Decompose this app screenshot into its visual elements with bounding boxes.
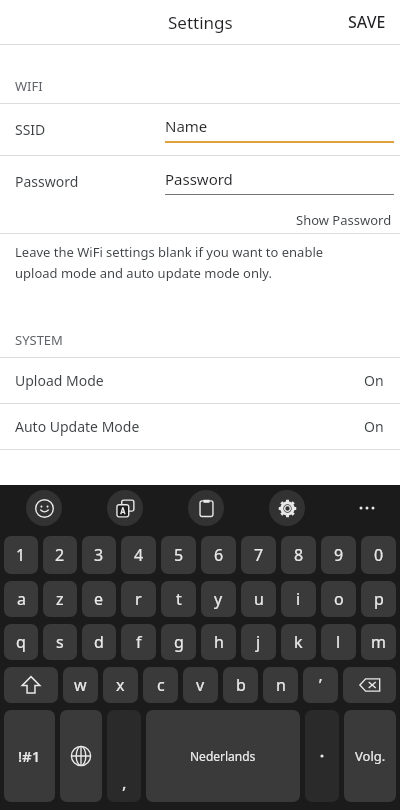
staticText: u: [254, 588, 264, 610]
staticText: w: [74, 674, 87, 696]
button[interactable]: y: [201, 581, 236, 617]
button[interactable]: e: [82, 581, 116, 617]
button[interactable]: [305, 710, 339, 802]
staticText: r: [135, 588, 142, 610]
staticText: 2: [55, 544, 65, 566]
button[interactable]: z: [43, 581, 77, 617]
button[interactable]: Settings: [269, 490, 305, 526]
staticText: SYSTEM: [15, 331, 63, 349]
button[interactable]: Change language: [60, 710, 102, 802]
button[interactable]: 1: [4, 536, 38, 574]
button[interactable]: r: [121, 581, 156, 617]
button[interactable]: f: [121, 624, 156, 660]
staticText: Volg.: [355, 747, 386, 765]
staticText: On: [364, 371, 384, 390]
staticText: Settings: [168, 11, 233, 34]
button[interactable]: n: [263, 667, 298, 703]
button[interactable]: Backspace: [343, 667, 396, 703]
button[interactable]: v: [183, 667, 218, 703]
button[interactable]: Nederlands: [146, 710, 300, 802]
staticText: !#1: [18, 746, 41, 766]
button[interactable]: Password: [0, 156, 400, 207]
staticText: k: [294, 631, 303, 653]
staticText: 5: [174, 544, 184, 566]
button[interactable]: t: [161, 581, 196, 617]
button[interactable]: a: [4, 581, 38, 617]
staticText: d: [94, 631, 104, 653]
button[interactable]: o: [321, 581, 356, 617]
button[interactable]: Shift: [4, 667, 58, 703]
staticText: upload mode and auto update mode only.: [15, 264, 272, 282]
staticText: y: [214, 588, 223, 610]
staticText: 7: [254, 544, 264, 566]
button[interactable]: Volg.: [344, 710, 396, 802]
staticText: t: [176, 588, 182, 610]
staticText: SSID: [15, 120, 165, 139]
button[interactable]: x: [103, 667, 138, 703]
staticText: 8: [294, 544, 304, 566]
staticText: ,: [122, 771, 127, 794]
button[interactable]: h: [201, 624, 236, 660]
button[interactable]: 4: [121, 536, 156, 574]
button[interactable]: 9: [321, 536, 356, 574]
staticText: s: [56, 631, 64, 653]
staticText: p: [374, 588, 384, 610]
staticText: i: [296, 588, 301, 610]
button[interactable]: q: [4, 624, 38, 660]
staticText: SAVE: [348, 11, 386, 33]
button[interactable]: More options: [350, 491, 384, 525]
button[interactable]: 3: [82, 536, 116, 574]
button[interactable]: Upload Mode: [0, 358, 400, 403]
button[interactable]: 2: [43, 536, 77, 574]
button[interactable]: w: [63, 667, 98, 703]
button[interactable]: 7: [241, 536, 276, 574]
staticText: 1: [16, 544, 26, 566]
staticText: 3: [94, 544, 104, 566]
button[interactable]: d: [82, 624, 116, 660]
staticText: On: [364, 417, 384, 436]
button[interactable]: SAVE: [334, 1, 400, 43]
button[interactable]: Emoji: [26, 490, 62, 526]
staticText: ’: [319, 674, 322, 696]
button[interactable]: SSID: [0, 104, 400, 155]
staticText: g: [174, 631, 184, 653]
button[interactable]: 8: [281, 536, 316, 574]
button[interactable]: c: [143, 667, 178, 703]
button[interactable]: l: [321, 624, 356, 660]
button[interactable]: g: [161, 624, 196, 660]
button[interactable]: ,: [107, 710, 141, 802]
button[interactable]: u: [241, 581, 276, 617]
staticText: Leave the WiFi settings blank if you wan…: [15, 243, 324, 261]
staticText: a: [17, 588, 26, 610]
button[interactable]: 6: [201, 536, 236, 574]
staticText: o: [334, 588, 344, 610]
staticText: Password: [165, 169, 233, 189]
staticText: Name: [165, 116, 208, 136]
button[interactable]: ’: [303, 667, 338, 703]
button[interactable]: Show Password: [288, 207, 400, 233]
staticText: e: [94, 588, 104, 610]
button[interactable]: !#1: [4, 710, 55, 802]
staticText: f: [136, 631, 142, 653]
staticText: 0: [374, 544, 384, 566]
button[interactable]: s: [43, 624, 77, 660]
button[interactable]: m: [361, 624, 396, 660]
button[interactable]: k: [281, 624, 316, 660]
staticText: q: [16, 631, 26, 653]
button[interactable]: 0: [361, 536, 396, 574]
button[interactable]: p: [361, 581, 396, 617]
button[interactable]: b: [223, 667, 258, 703]
button[interactable]: 5: [161, 536, 196, 574]
staticText: Show Password: [296, 211, 392, 229]
staticText: Nederlands: [190, 748, 256, 764]
button[interactable]: j: [241, 624, 276, 660]
staticText: n: [276, 674, 286, 696]
staticText: j: [256, 631, 261, 653]
staticText: z: [56, 588, 64, 610]
staticText: v: [196, 674, 205, 696]
button[interactable]: Translate: [107, 490, 143, 526]
button[interactable]: i: [281, 581, 316, 617]
staticText: Password: [15, 172, 165, 191]
button[interactable]: Clipboard: [188, 490, 224, 526]
button[interactable]: Auto Update Mode: [0, 404, 400, 449]
